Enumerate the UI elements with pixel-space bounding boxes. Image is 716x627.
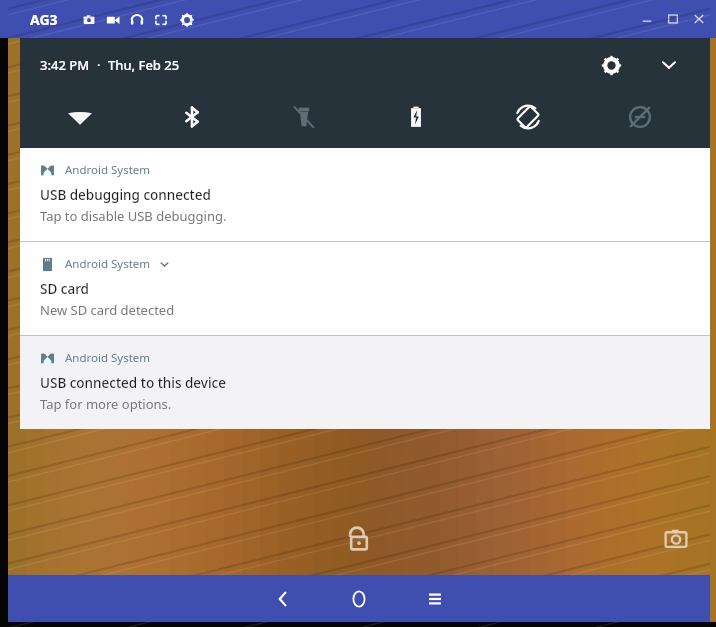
button[interactable]: Fullscreen [152,11,170,29]
button[interactable]: Audio [128,11,146,29]
button[interactable]: Maximize [664,10,682,28]
button[interactable]: Battery saver [360,94,472,140]
staticText: SD card [40,280,89,298]
button[interactable]: Expand [652,48,686,82]
button[interactable]: Record video [104,11,122,29]
staticText: USB debugging connected [40,186,211,204]
staticText: USB connected to this device [40,374,226,392]
button[interactable]: Screenshot [80,11,98,29]
staticText: Android System [65,350,151,366]
button[interactable]: Android System [20,336,710,429]
staticText: Thu, Feb 25 [108,56,180,74]
button[interactable]: Minimize [638,10,656,28]
button[interactable]: Recents [413,577,457,621]
button[interactable]: Auto rotate [472,94,584,140]
staticText: · [97,56,101,74]
button[interactable]: Wi-Fi [24,94,136,140]
button[interactable]: Flashlight [248,94,360,140]
button[interactable]: Settings [594,48,628,82]
button[interactable]: Settings [178,11,196,29]
button[interactable]: Close [690,10,708,28]
staticText: Tap for more options. [40,395,172,413]
button[interactable]: Bluetooth [136,94,248,140]
button[interactable]: Unlock [337,517,381,561]
button[interactable]: Home [337,577,381,621]
button[interactable]: Android System [20,148,710,241]
button[interactable]: Android System [20,242,710,335]
button[interactable]: Camera [654,517,698,561]
staticText: Android System [65,256,151,272]
staticText: 3:42 PM [40,56,90,74]
staticText: Tap to disable USB debugging. [40,207,227,225]
button[interactable]: Do not disturb [584,94,696,140]
staticText: AG3 [30,10,58,29]
button[interactable]: Back [261,577,305,621]
staticText: New SD card detected [40,301,175,319]
staticText: Android System [65,162,151,178]
